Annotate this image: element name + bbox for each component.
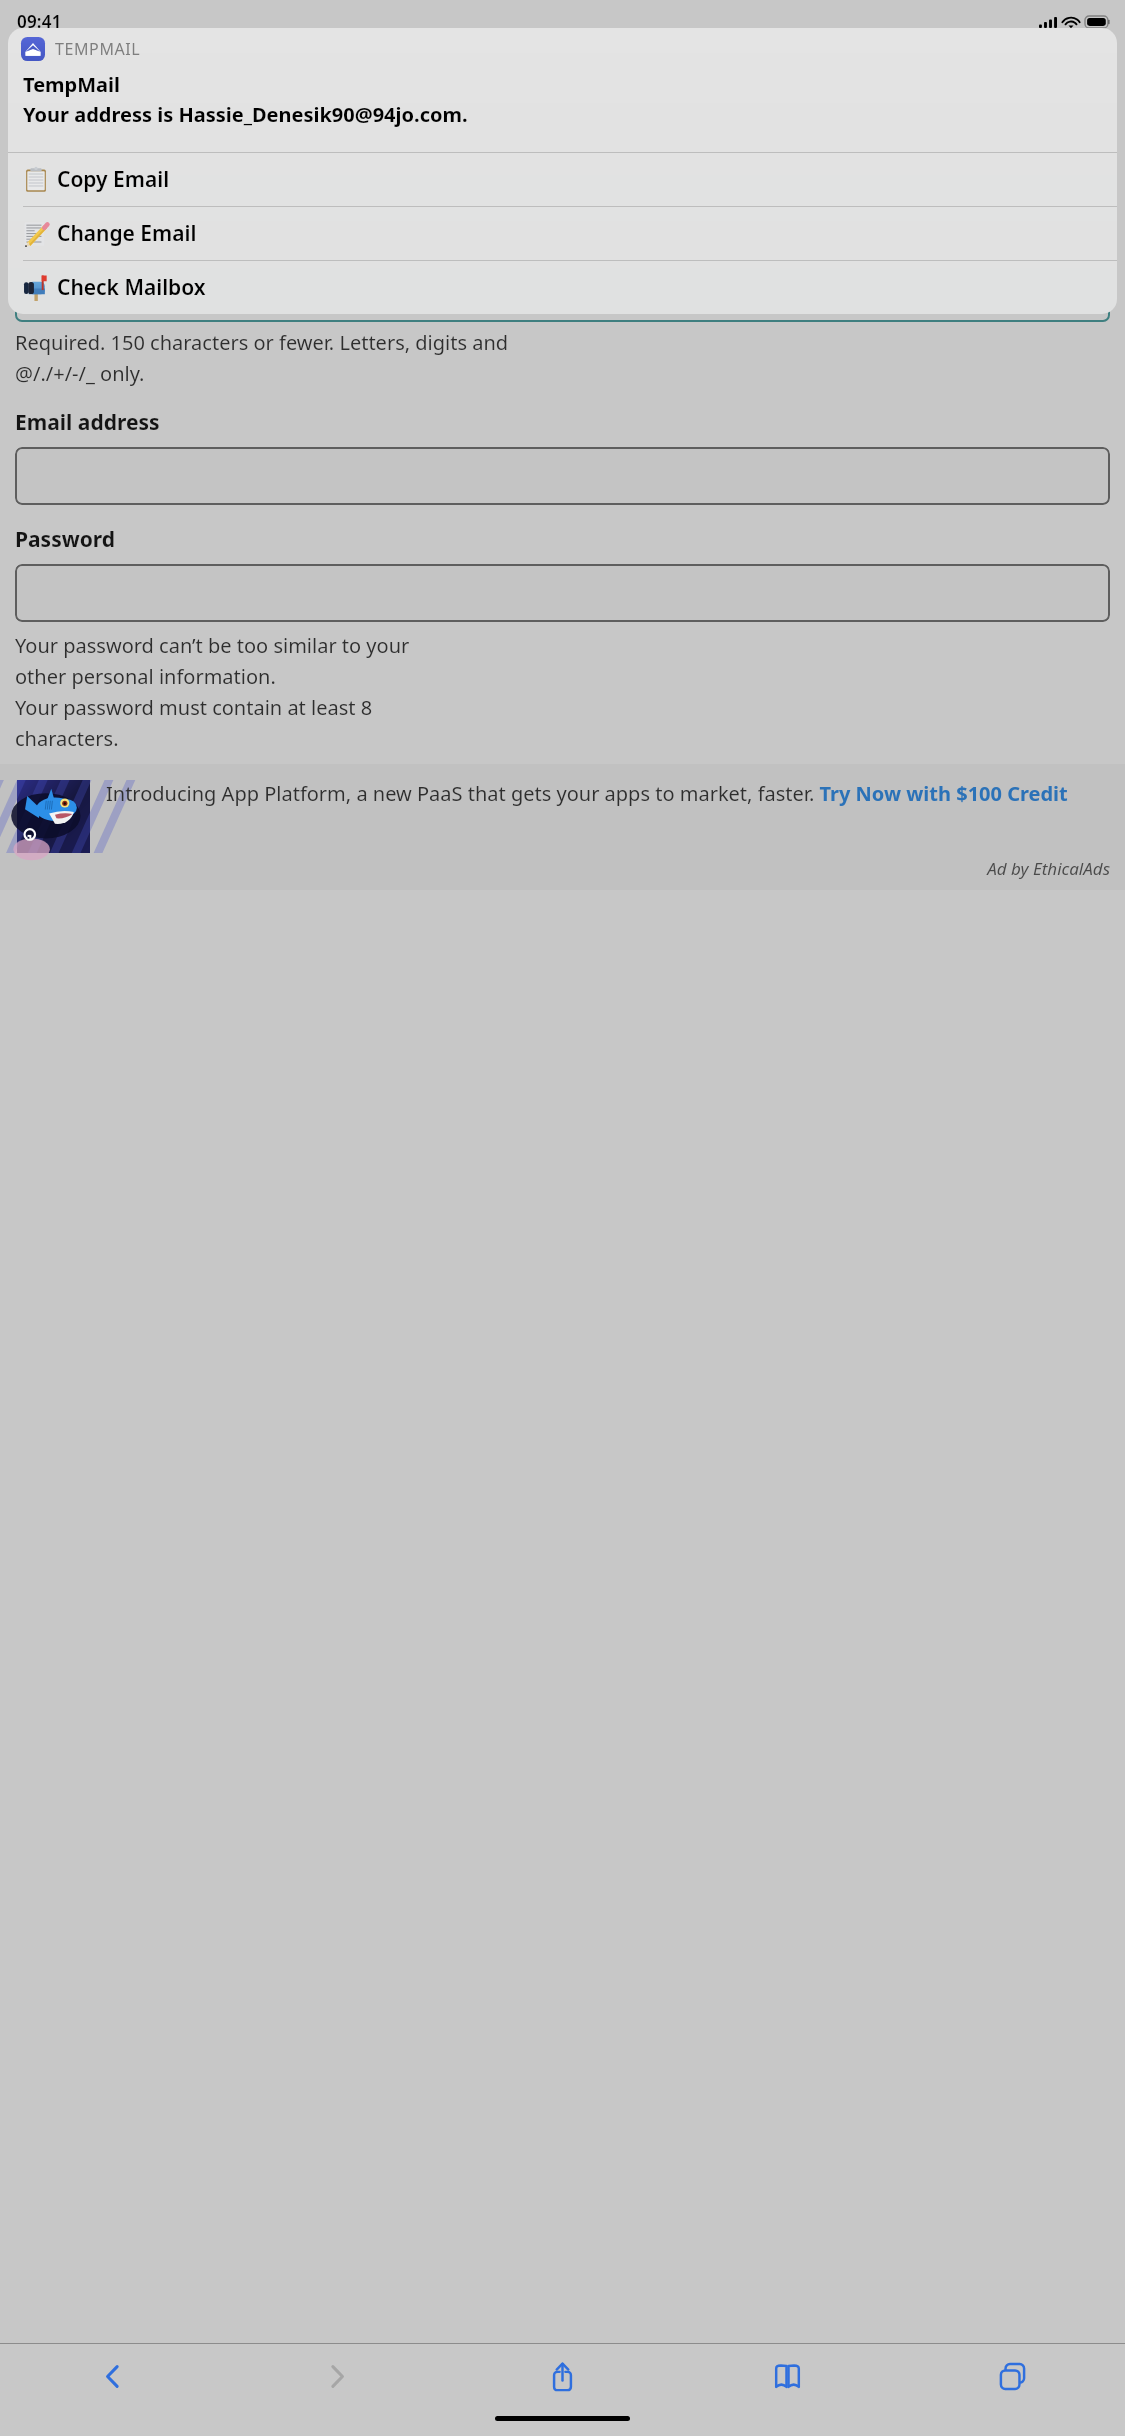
staticText: Check Mailbox [57, 273, 206, 302]
staticText: TEMPMAIL [55, 38, 141, 60]
button[interactable]: Change Email [8, 207, 1117, 260]
staticText: 09:41 [17, 10, 62, 33]
button[interactable]: Check Mailbox [8, 261, 1117, 314]
button[interactable]: Back [0, 2344, 225, 2408]
staticText: Your password can’t be too similar to yo… [15, 632, 410, 752]
staticText: Ad by EthicalAds [17, 857, 1110, 880]
staticText: Email address [15, 408, 160, 437]
button[interactable]: Tabs [900, 2344, 1125, 2408]
staticText: Required. 150 characters or fewer. Lette… [15, 329, 509, 386]
button[interactable]: Share [450, 2344, 675, 2408]
button[interactable]: TempMail app icon [21, 37, 1104, 61]
staticText: Change Email [57, 219, 197, 248]
button[interactable]: Copy Email [8, 153, 1117, 206]
staticText: Introducing App Platform, a new PaaS tha… [106, 780, 1068, 807]
button[interactable] [15, 447, 1110, 505]
staticText: Copy Email [57, 165, 170, 194]
staticText: Your address is Hassie_Denesik90@94jo.co… [23, 101, 468, 128]
other: TempMail app icon [21, 37, 45, 61]
button[interactable] [15, 564, 1110, 622]
staticText: Password [15, 525, 116, 554]
button[interactable]: Bookmarks [675, 2344, 900, 2408]
staticText: TempMail [23, 71, 120, 98]
button[interactable]: TempMail [23, 71, 1104, 128]
button[interactable]: Introducing App Platform, a new PaaS tha… [17, 780, 1110, 880]
